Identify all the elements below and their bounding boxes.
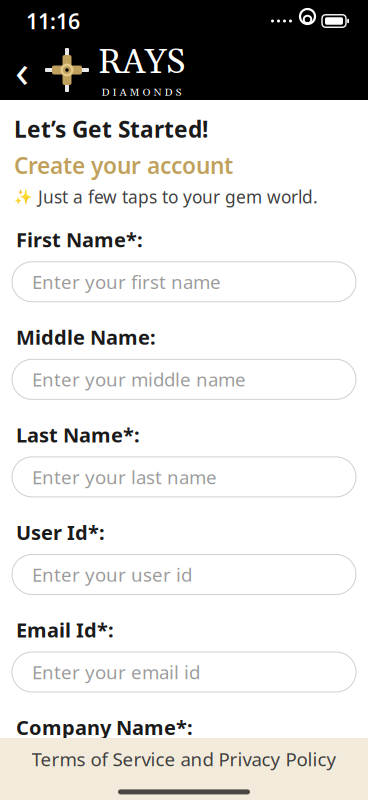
button[interactable]: Enter your first name bbox=[12, 262, 356, 302]
staticText: Email Id*: bbox=[16, 616, 114, 643]
staticText: User Id*: bbox=[16, 519, 105, 545]
button[interactable]: Back bbox=[4, 45, 40, 95]
staticText: Enter your company name* bbox=[32, 757, 276, 782]
staticText: RAYS bbox=[98, 41, 185, 85]
staticText: D I A M O N D S bbox=[101, 86, 181, 99]
staticText: Enter your first name bbox=[32, 269, 221, 294]
staticText: Enter your user id bbox=[32, 562, 192, 587]
staticText: ✨ bbox=[14, 188, 32, 205]
button[interactable]: Enter your last name bbox=[12, 457, 356, 497]
staticText: Middle Name: bbox=[16, 324, 156, 350]
staticText: 11:16 bbox=[26, 7, 80, 35]
staticText: ‹ bbox=[15, 40, 29, 100]
staticText: Enter your email id bbox=[32, 660, 200, 684]
staticText: Create your account bbox=[14, 150, 233, 180]
staticText: Enter your last name bbox=[32, 464, 217, 489]
button[interactable]: Enter your email id bbox=[12, 652, 356, 692]
button[interactable]: Terms of Service and Privacy Policy bbox=[0, 735, 368, 781]
staticText: Terms of Service and Privacy Policy bbox=[31, 747, 336, 771]
button[interactable]: Enter your middle name bbox=[12, 359, 356, 399]
staticText: Enter your middle name bbox=[32, 367, 246, 392]
staticText: Last Name*: bbox=[16, 421, 140, 448]
button[interactable]: Enter your user id bbox=[12, 554, 356, 594]
staticText: Let’s Get Started! bbox=[14, 114, 208, 144]
button[interactable]: Enter your company name* bbox=[12, 750, 356, 790]
staticText: First Name*: bbox=[16, 226, 143, 253]
staticText: Company Name*: bbox=[16, 714, 193, 741]
staticText: Just a few taps to your gem world. bbox=[38, 185, 318, 208]
